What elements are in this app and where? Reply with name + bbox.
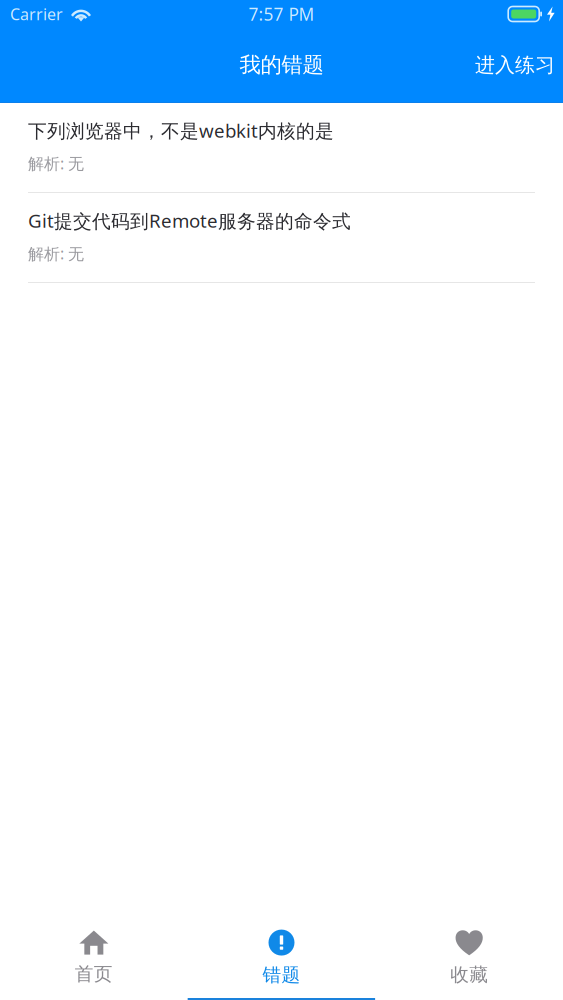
staticText: 错题 (262, 964, 300, 986)
button[interactable]: 错题 (188, 917, 375, 998)
staticText: Carrier (10, 3, 63, 25)
button[interactable]: 收藏 (375, 917, 563, 998)
staticText: 进入练习 (475, 53, 555, 77)
staticText: 我的错题 (239, 52, 323, 78)
staticText: Git提交代码到Remote服务器的命令式 (28, 208, 351, 233)
button[interactable]: Git提交代码到Remote服务器的命令式 (0, 193, 563, 283)
staticText: 7:57 PM (248, 2, 314, 25)
staticText: 首页 (75, 963, 113, 985)
staticText: 解析: 无 (28, 243, 84, 264)
staticText: 下列浏览器中，不是webkit内核的是 (28, 118, 334, 143)
button[interactable]: 下列浏览器中，不是webkit内核的是 (0, 103, 563, 193)
staticText: 收藏 (450, 963, 488, 986)
button[interactable]: 进入练习 (461, 44, 563, 86)
staticText: 解析: 无 (28, 153, 84, 174)
button[interactable]: 首页 (0, 918, 188, 997)
